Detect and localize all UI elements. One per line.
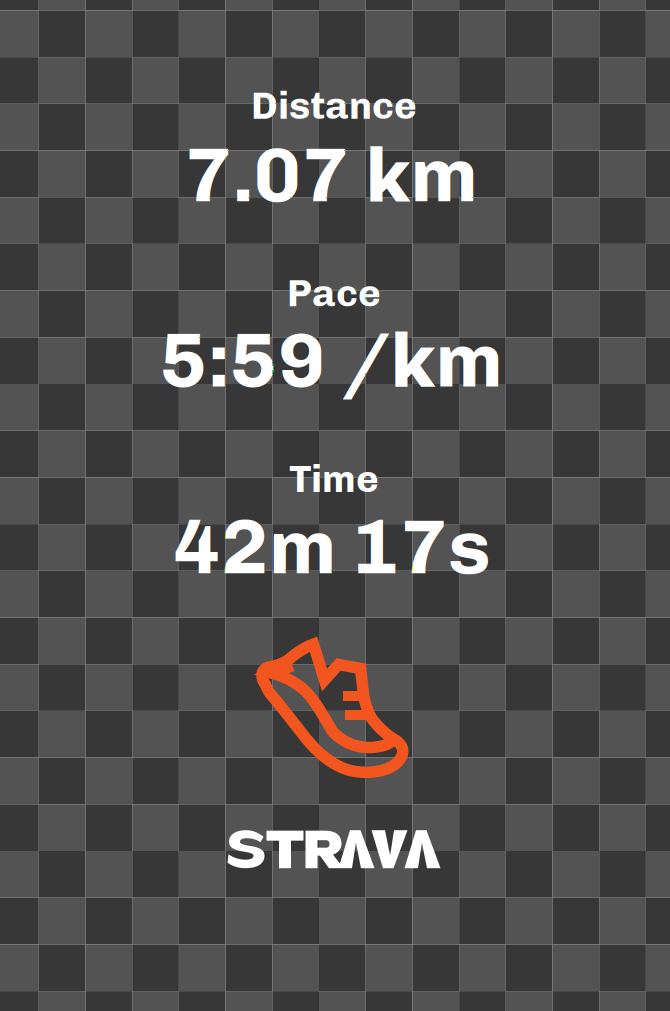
staticText: 42m 17s (173, 500, 491, 592)
staticText: 5:59 /km (159, 314, 502, 406)
staticText: Time (289, 456, 379, 502)
staticText: 7.07 km (184, 128, 477, 220)
staticText: Distance (251, 82, 417, 128)
staticText: Pace (287, 270, 381, 316)
